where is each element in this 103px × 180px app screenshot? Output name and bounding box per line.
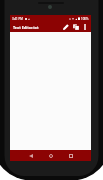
button[interactable]: Home bbox=[44, 150, 57, 161]
button[interactable]: Recent apps bbox=[64, 150, 77, 161]
staticText: 3:41 PM bbox=[12, 17, 23, 21]
staticText: Text Editor.txt bbox=[13, 25, 39, 30]
button[interactable]: Edit bbox=[61, 22, 71, 32]
button[interactable]: More options bbox=[81, 22, 88, 32]
staticText: 100% bbox=[81, 17, 89, 21]
button[interactable]: Back bbox=[24, 150, 37, 161]
button[interactable]: Save bbox=[71, 22, 81, 32]
